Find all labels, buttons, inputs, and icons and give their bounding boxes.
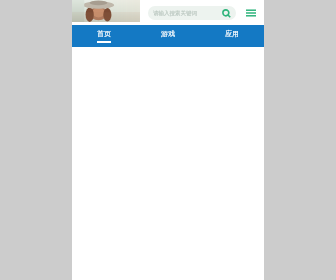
staticText: 游戏 (161, 29, 175, 38)
staticText: 请输入搜索关键词 (153, 10, 197, 17)
button[interactable]: 游戏 (136, 25, 200, 47)
button[interactable]: Menu (244, 6, 258, 20)
button[interactable]: 首页 (72, 25, 136, 47)
button[interactable]: Banner photo (72, 0, 140, 22)
button[interactable]: 请输入搜索关键词 (148, 6, 236, 20)
button[interactable]: 应用 (200, 25, 264, 47)
staticText: 首页 (97, 29, 111, 38)
staticText: 应用 (225, 29, 239, 38)
